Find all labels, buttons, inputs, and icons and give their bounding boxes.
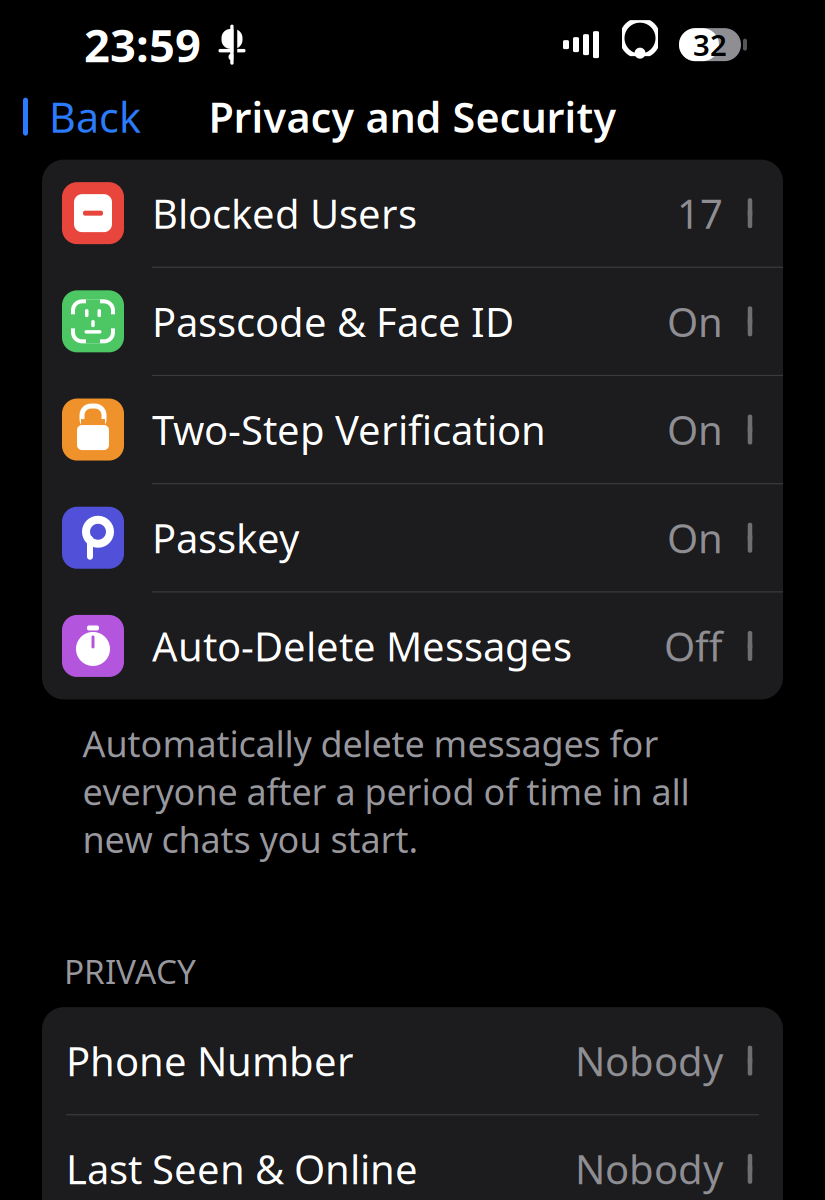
staticText: Off	[664, 619, 723, 672]
button[interactable]: Blocked Users	[42, 160, 783, 268]
staticText: 17	[677, 187, 723, 240]
staticText: On	[667, 403, 723, 456]
staticText: Passkey	[152, 511, 299, 564]
staticText: Automatically delete messages for everyo…	[82, 719, 689, 863]
staticText: PRIVACY	[64, 949, 196, 993]
staticText: On	[667, 511, 723, 564]
staticText: Nobody	[575, 1034, 723, 1087]
button[interactable]: Two-Step Verification	[42, 376, 783, 484]
staticText: Blocked Users	[152, 187, 417, 240]
staticText: Phone Number	[66, 1034, 354, 1087]
staticText: Privacy and Security	[208, 89, 616, 144]
button[interactable]: Phone Number	[42, 1007, 783, 1115]
button[interactable]: Passcode & Face ID	[42, 268, 783, 376]
staticText: 32	[693, 25, 727, 64]
staticText: On	[667, 295, 723, 348]
button[interactable]: Last Seen & Online	[42, 1115, 783, 1200]
staticText: Back	[49, 89, 141, 144]
button[interactable]: Back	[0, 79, 141, 154]
staticText: Nobody	[575, 1142, 723, 1195]
button[interactable]: Auto-Delete Messages	[42, 592, 783, 699]
staticText: 23:59	[84, 15, 201, 75]
button[interactable]: Passkey	[42, 484, 783, 592]
staticText: Last Seen & Online	[66, 1142, 418, 1195]
staticText: Passcode & Face ID	[152, 295, 514, 348]
staticText: Two-Step Verification	[152, 403, 546, 456]
staticText: Auto-Delete Messages	[152, 619, 572, 672]
